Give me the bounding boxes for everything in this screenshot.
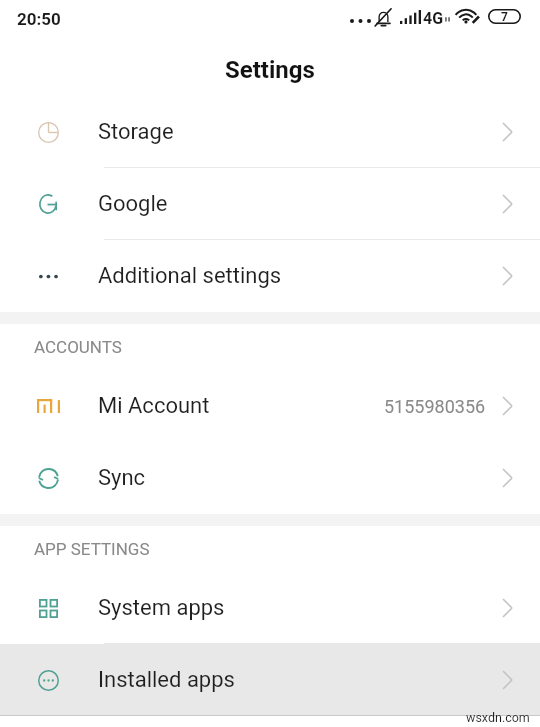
button[interactable]: Google xyxy=(0,168,540,240)
staticText: 4G xyxy=(423,9,444,28)
button[interactable]: Installed apps xyxy=(0,644,540,716)
staticText: ACCOUNTS xyxy=(34,337,122,357)
staticText: 7 xyxy=(501,10,508,24)
button[interactable]: Additional settings xyxy=(0,240,540,312)
staticText: Mi Account xyxy=(98,393,210,419)
staticText: Additional settings xyxy=(98,263,282,289)
staticText: Installed apps xyxy=(98,667,235,693)
staticText: Settings xyxy=(225,56,315,84)
button[interactable]: Sync xyxy=(0,442,540,514)
button[interactable]: System apps xyxy=(0,572,540,644)
staticText: Google xyxy=(98,191,168,217)
staticText: 20:50 xyxy=(17,9,61,29)
staticText: APP SETTINGS xyxy=(34,539,150,559)
staticText: 5155980356 xyxy=(384,396,486,417)
staticText: Sync xyxy=(98,465,146,491)
button[interactable]: Mi Account xyxy=(0,370,540,442)
staticText: System apps xyxy=(98,595,225,621)
staticText: wsxdn.com xyxy=(466,710,530,725)
staticText: Storage xyxy=(98,119,174,145)
button[interactable]: Storage xyxy=(0,96,540,168)
